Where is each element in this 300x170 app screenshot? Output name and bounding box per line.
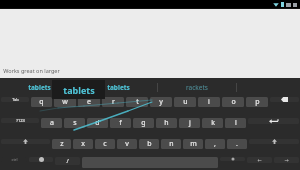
staticText: ← [257, 157, 262, 163]
staticText: y [159, 97, 163, 107]
staticText: z [60, 139, 64, 149]
staticText: u [183, 97, 188, 107]
button[interactable]: Tab [1, 97, 29, 102]
button[interactable]: Shift [1, 139, 50, 144]
button[interactable]: v [117, 139, 137, 149]
button[interactable]: tablets [52, 80, 105, 99]
staticText: v [125, 139, 129, 149]
staticText: k [211, 118, 215, 128]
staticText: g [141, 118, 146, 128]
button[interactable]: o [222, 97, 244, 107]
button[interactable]: Backspace [270, 97, 299, 102]
staticText: d [95, 118, 100, 128]
button[interactable]: k [202, 118, 223, 128]
button[interactable]: a [41, 118, 62, 128]
staticText: t [136, 97, 139, 107]
button[interactable]: s [64, 118, 85, 128]
button[interactable]: tablets [79, 78, 157, 96]
staticText: / [66, 157, 69, 165]
staticText: Tab [12, 97, 19, 102]
button[interactable]: rackets [158, 78, 236, 96]
button[interactable]: l [225, 118, 246, 128]
button[interactable]: z [52, 139, 71, 149]
staticText: ?123 [16, 118, 25, 123]
button[interactable]: Control [1, 157, 27, 162]
button[interactable]: ?123 [1, 118, 39, 123]
button[interactable]: Works great on larger [0, 9, 300, 78]
button[interactable]: e [78, 97, 100, 107]
staticText: → [284, 157, 289, 163]
button[interactable]: Enter [248, 118, 299, 124]
staticText: x [81, 139, 85, 149]
button[interactable]: y [150, 97, 172, 107]
button[interactable]: , [205, 139, 225, 149]
staticText: a [50, 118, 54, 128]
staticText: tablets [63, 84, 95, 96]
button[interactable]: t [126, 97, 148, 107]
staticText: tablets [28, 83, 51, 92]
button[interactable]: g [133, 118, 154, 128]
button[interactable]: Right [274, 157, 299, 163]
staticText: o [231, 97, 236, 107]
staticText: ctrl [11, 157, 18, 162]
staticText: , [214, 139, 216, 149]
button[interactable]: x [73, 139, 93, 149]
button[interactable]: p [246, 97, 268, 107]
button[interactable]: Settings [220, 157, 245, 161]
staticText: Works great on larger [3, 67, 60, 74]
staticText: s [73, 118, 77, 128]
button[interactable]: Left [247, 157, 272, 163]
button[interactable]: n [161, 139, 181, 149]
staticText: e [87, 97, 91, 107]
staticText: l [235, 118, 237, 128]
staticText: f [119, 118, 122, 128]
button[interactable]: . [227, 139, 247, 149]
button[interactable]: tablets [0, 78, 78, 96]
button[interactable]: c [95, 139, 115, 149]
button[interactable]: r [102, 97, 124, 107]
button[interactable]: Shift [249, 139, 299, 144]
staticText: b [147, 139, 152, 149]
button[interactable]: i [198, 97, 220, 107]
button[interactable]: Emoji [29, 157, 53, 162]
staticText: p [255, 97, 260, 107]
button[interactable]: f [110, 118, 131, 128]
staticText: . [236, 139, 238, 149]
staticText: n [169, 139, 174, 149]
staticText: r [112, 97, 115, 107]
staticText: rackets [186, 83, 208, 92]
button[interactable]: w [54, 97, 76, 107]
button[interactable]: / [55, 157, 80, 165]
staticText: h [164, 118, 169, 128]
staticText: m [190, 139, 197, 149]
staticText: j [189, 118, 191, 128]
button[interactable]: m [183, 139, 203, 149]
button[interactable]: d [87, 118, 108, 128]
button[interactable]: h [156, 118, 177, 128]
button[interactable]: q [31, 97, 52, 107]
button[interactable]: u [174, 97, 196, 107]
button[interactable]: j [179, 118, 200, 128]
staticText: w [62, 97, 68, 107]
staticText: i [208, 97, 210, 107]
staticText: tablets [107, 83, 130, 92]
staticText: q [39, 97, 44, 107]
button[interactable]: b [139, 139, 159, 149]
staticText: c [103, 139, 107, 149]
